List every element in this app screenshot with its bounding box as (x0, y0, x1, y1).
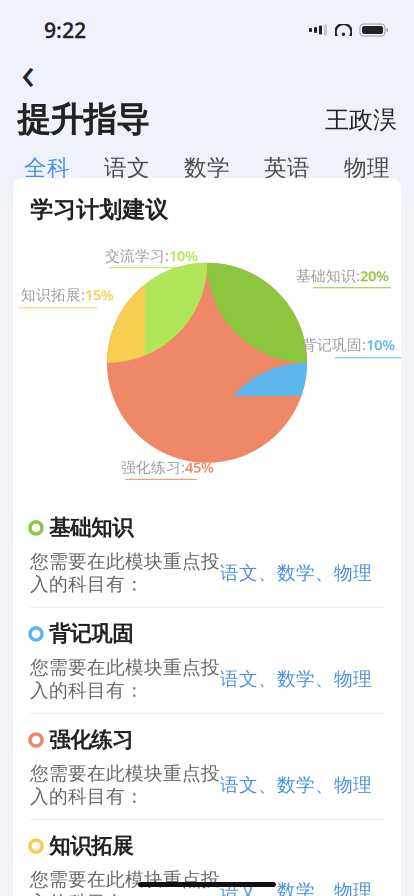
staticText: 语文、数学、物理 (220, 561, 372, 584)
staticText: 提升指导 (17, 99, 149, 140)
staticText: 您需要在此模块重点投入的科目有： (30, 762, 220, 808)
staticText: 语文、数学、物理 (220, 667, 372, 690)
staticText: 您需要在此模块重点投入的科目有： (30, 550, 220, 596)
staticText: 背记巩固: (302, 335, 366, 354)
staticText: 数学 (184, 154, 230, 182)
staticText: 学习计划建议 (30, 196, 168, 224)
staticText: 20% (360, 266, 389, 285)
staticText: 9:22 (44, 16, 86, 44)
staticText: 您需要在此模块重点投入的科目有： (30, 656, 220, 702)
button[interactable]: 物理 (327, 148, 407, 196)
staticText: 物理 (344, 154, 390, 182)
button[interactable]: 语文 (87, 148, 167, 196)
staticText: 王政淏 (325, 105, 397, 135)
button[interactable]: 知识拓展 (30, 820, 384, 896)
staticText: 交流学习: (105, 246, 169, 265)
staticText: 语文、数学、物理 (220, 774, 372, 796)
staticText: 基础知识: (296, 266, 360, 285)
staticText: 语文 (104, 154, 150, 182)
staticText: ‹ (21, 42, 35, 102)
staticText: 45% (185, 457, 214, 477)
staticText: 15% (85, 285, 114, 304)
staticText: 基础知识 (49, 515, 133, 541)
staticText: 10% (169, 246, 198, 265)
button[interactable]: 数学 (167, 148, 247, 196)
staticText: 英语 (264, 154, 310, 182)
staticText: 10% (366, 335, 395, 354)
staticText: 知识拓展 (49, 833, 133, 859)
button[interactable]: 强化练习 (30, 714, 384, 820)
button[interactable]: 王政淏 (315, 99, 397, 141)
staticText: 背记巩固 (49, 621, 133, 647)
staticText: 强化练习: (121, 457, 185, 477)
button[interactable]: 英语 (247, 148, 327, 196)
button[interactable]: 背记巩固 (30, 608, 384, 714)
staticText: 您需要在此模块重点投入的科目有： (30, 868, 220, 896)
staticText: 强化练习 (49, 727, 133, 753)
staticText: 全科 (24, 154, 70, 182)
button[interactable]: 全科 (7, 148, 87, 196)
staticText: 知识拓展: (21, 285, 85, 304)
button[interactable]: Back (6, 52, 50, 92)
staticText: 语文、数学、物理 (220, 880, 372, 896)
button[interactable]: 基础知识 (30, 502, 384, 608)
